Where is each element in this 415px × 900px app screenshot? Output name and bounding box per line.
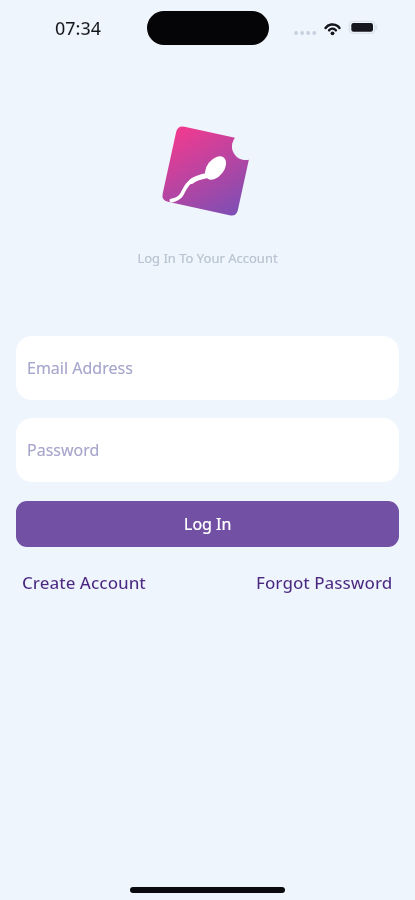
staticText: Forgot Password <box>256 571 393 594</box>
button[interactable]: Log In <box>16 501 399 547</box>
staticText: Log In <box>184 513 232 535</box>
button[interactable]: Email Address <box>16 336 399 400</box>
staticText: Email Address <box>27 357 133 379</box>
staticText: Password <box>27 439 100 461</box>
other: Status icons <box>292 18 382 38</box>
staticText: Create Account <box>22 571 146 594</box>
button[interactable]: Password <box>16 418 399 482</box>
staticText: Log In To Your Account <box>0 249 415 267</box>
button[interactable]: Create Account <box>22 571 146 594</box>
staticText: 07:34 <box>55 16 102 41</box>
button[interactable]: Forgot Password <box>256 571 393 594</box>
